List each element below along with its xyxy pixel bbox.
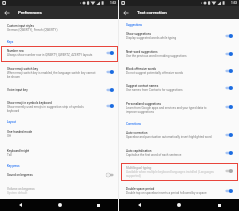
staticText: Learn from Google apps and services and … [126,106,215,114]
staticText: Keyboard height [7,149,30,153]
button[interactable]: Next-word suggestions [225,51,233,57]
staticText: Sound on keypress [7,173,33,177]
staticText: Off [7,134,12,138]
button[interactable]: Auto-correction [225,132,233,138]
button[interactable]: Home [159,199,199,211]
button[interactable]: One-handed mode [0,130,118,143]
button[interactable]: Multilingual typing [119,166,239,179]
staticText: Use names from Contacts for suggestions [126,88,183,92]
staticText: Number row [7,49,24,53]
staticText: Tall [7,153,12,157]
staticText: Show recently used emojis in suggestion … [7,105,96,113]
staticText: Voice input key [7,88,28,92]
button[interactable]: Suggest contact names [119,84,239,97]
staticText: Display suggested words while typing [126,36,177,40]
button[interactable]: Show emoji switch key [106,69,114,75]
staticText: Auto-correction [126,131,148,135]
button[interactable]: Recent apps [199,199,239,211]
staticText: Corrections [126,122,142,125]
button[interactable]: Multilingual typing [225,168,233,174]
staticText: Personalized suggestions [126,102,162,106]
button[interactable]: Back [0,199,40,211]
button[interactable]: Block offensive words [119,67,239,80]
button[interactable]: Custom input styles [0,24,118,37]
staticText: Suggestions [126,23,143,26]
staticText: Multilingual typing [126,166,152,170]
button[interactable]: Double-space period [225,188,233,194]
button[interactable]: Show suggestions [225,33,233,39]
staticText: Next-word suggestions [126,50,158,54]
button[interactable]: Next-word suggestions [119,50,239,63]
staticText: Capitalise the first word of each senten… [126,153,182,157]
staticText: Spacebar and punctuation automatically i… [126,135,212,139]
button[interactable]: Personalized suggestions [225,104,233,110]
button[interactable]: Volume on keypress [0,187,118,200]
button[interactable]: Show suggestions [119,32,239,45]
staticText: Volume on keypress [7,187,35,191]
button[interactable]: Voice input key [0,88,118,95]
button[interactable]: Number row [0,49,118,62]
staticText: German (QWERTY), French (QWERTY) [7,28,58,32]
staticText: Use the previous word in making suggesti… [126,54,187,58]
staticText: System default [7,191,28,195]
staticText: Keys [7,40,14,43]
button[interactable]: Voice input key [106,87,114,93]
staticText: Available when multiple keyboard languag… [126,170,215,178]
button[interactable]: Show emoji switch key [0,67,118,80]
button[interactable]: Home [40,199,79,211]
button[interactable]: Auto-correction [119,131,239,144]
button[interactable]: Recent apps [79,199,118,211]
staticText: Key press [7,164,20,167]
staticText: When emoji switch key is enabled, the la… [7,71,96,79]
staticText: Block offensive words [126,67,157,71]
button[interactable]: Number row [106,50,114,56]
button[interactable]: Back [119,199,159,211]
staticText: Show emoji in symbols keyboard [7,101,52,105]
staticText: 1:53 [231,1,238,5]
button[interactable]: Navigate back [119,6,132,19]
staticText: Suggest contact names [126,84,159,88]
button[interactable]: Show emoji in symbols keyboard [106,103,114,109]
staticText: Text correction [137,10,167,15]
button[interactable]: Auto capitalisation [225,150,233,156]
button[interactable]: Personalized suggestions [119,102,239,115]
staticText: Layout [7,120,16,123]
staticText: One-handed mode [7,130,33,134]
staticText: Show suggestions [126,32,151,36]
staticText: Always show number row in QWERTY, QWERTZ… [7,53,93,57]
button[interactable]: Keyboard height [0,149,118,162]
staticText: Preferences [18,10,42,15]
button[interactable]: Show emoji in symbols keyboard [0,101,118,114]
button[interactable]: Auto capitalisation [119,149,239,162]
staticText: Double-space period [126,187,155,191]
button[interactable]: Navigate back [0,6,13,19]
button[interactable]: Suggest contact names [225,85,233,91]
button[interactable]: Double-space period [119,187,239,200]
staticText: Show emoji switch key [7,67,38,71]
staticText: Custom input styles [7,24,35,28]
staticText: Double tap on spacebar inserts a period … [126,191,207,195]
button[interactable]: Sound on keypress [106,172,114,178]
button[interactable]: Sound on keypress [0,173,118,180]
staticText: 1:53 [110,1,117,5]
button[interactable]: Block offensive words [225,68,233,74]
staticText: Do not suggest potentially offensive wor… [126,71,184,75]
staticText: Auto capitalisation [126,149,152,153]
